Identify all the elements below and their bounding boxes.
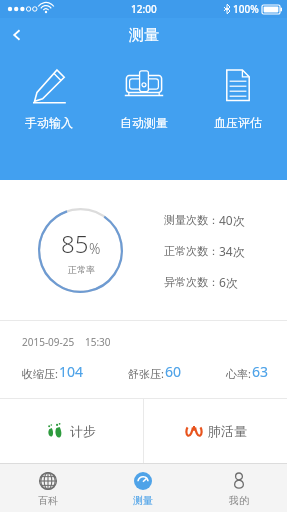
staticText: 计步 — [70, 423, 96, 439]
staticText: 测量 — [129, 26, 159, 45]
button[interactable]: 百科 — [0, 464, 95, 512]
staticText: 测量 — [133, 494, 153, 507]
staticText: 60 — [165, 362, 182, 381]
staticText: % — [89, 239, 101, 258]
button[interactable]: 计步 — [0, 399, 143, 463]
staticText: 15:30 — [85, 335, 111, 349]
staticText: 自动测量 — [120, 115, 168, 130]
button[interactable]: 测量 — [95, 464, 191, 512]
button[interactable]: 肺活量 — [144, 399, 287, 463]
button[interactable]: 血压评估 — [192, 66, 284, 130]
staticText: 2015-09-25 — [22, 335, 75, 349]
staticText: 收缩压: — [22, 366, 58, 381]
staticText: 40次 — [219, 212, 245, 228]
staticText: 异常次数： — [164, 275, 219, 289]
staticText: 心率: — [226, 366, 251, 381]
staticText: 63 — [252, 362, 269, 381]
staticText: 正常率 — [68, 264, 95, 275]
staticText: 正常次数： — [164, 244, 219, 258]
button[interactable]: Back — [0, 18, 34, 52]
staticText: 百科 — [38, 494, 58, 507]
staticText: 血压评估 — [214, 115, 262, 130]
staticText: 舒张压: — [128, 366, 164, 381]
staticText: 100% — [233, 2, 259, 16]
staticText: 104 — [59, 362, 84, 381]
staticText: 6次 — [219, 274, 238, 290]
staticText: 85 — [61, 227, 89, 260]
staticText: 肺活量 — [208, 423, 247, 439]
button[interactable]: 自动测量 — [98, 66, 190, 130]
staticText: 测量次数： — [164, 213, 219, 227]
staticText: 手动输入 — [25, 115, 73, 130]
staticText: 12:00 — [131, 2, 157, 16]
button[interactable]: 手动输入 — [3, 66, 95, 130]
button[interactable]: 2015-09-25 — [0, 321, 287, 398]
staticText: 34次 — [219, 243, 245, 259]
staticText: 我的 — [229, 494, 249, 507]
button[interactable]: 我的 — [191, 464, 287, 512]
